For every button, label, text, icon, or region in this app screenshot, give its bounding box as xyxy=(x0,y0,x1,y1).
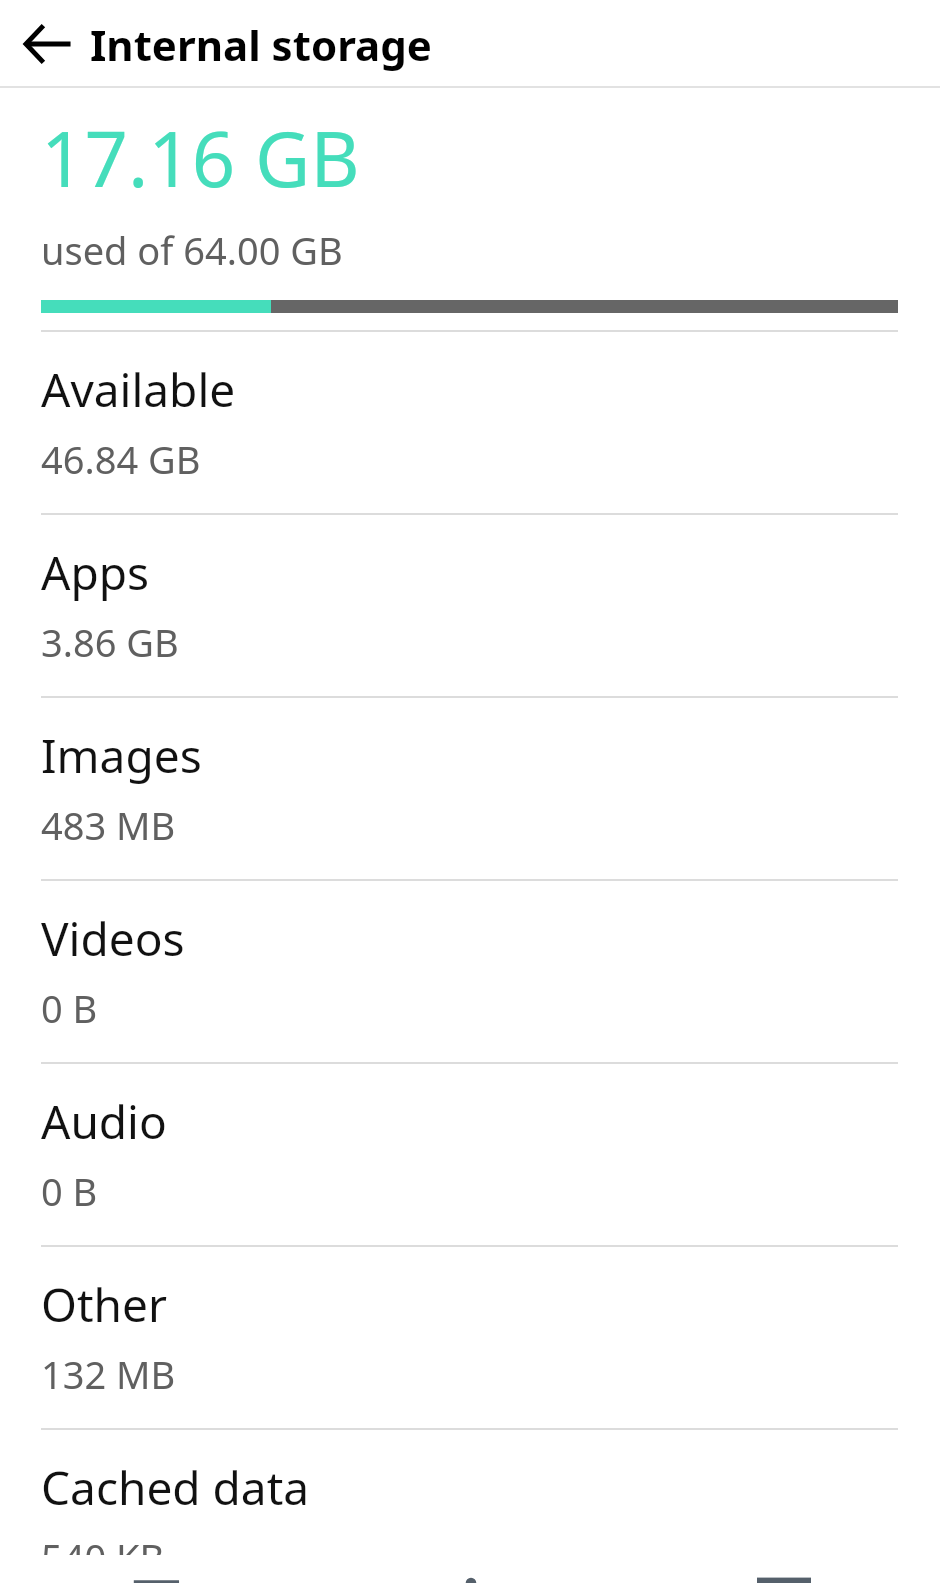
staticText: 540 KB xyxy=(41,1531,165,1555)
staticText: Other xyxy=(41,1273,167,1336)
staticText: Audio xyxy=(41,1090,167,1153)
staticText: Apps xyxy=(41,541,150,604)
staticText: 17.16 GB xyxy=(41,106,360,210)
staticText: Images xyxy=(41,724,202,787)
staticText: 132 MB xyxy=(41,1348,176,1400)
staticText: used of 64.00 GB xyxy=(41,224,343,276)
button[interactable]: Back xyxy=(12,8,84,80)
staticText: 0 B xyxy=(41,1165,98,1217)
staticText: Internal storage xyxy=(90,16,432,73)
staticText: Available xyxy=(41,358,236,421)
button[interactable]: Apps xyxy=(0,515,940,698)
button[interactable]: Other xyxy=(0,1247,940,1430)
staticText: 483 MB xyxy=(41,799,176,851)
staticText: 3.86 GB xyxy=(41,616,179,668)
button[interactable]: Available xyxy=(0,332,940,515)
staticText: Cached data xyxy=(41,1456,310,1519)
staticText: Videos xyxy=(41,907,185,970)
button[interactable]: Videos xyxy=(0,881,940,1064)
button[interactable]: Audio xyxy=(0,1064,940,1247)
staticText: 0 B xyxy=(41,982,98,1034)
button[interactable]: Cached data xyxy=(0,1430,940,1583)
button[interactable]: Images xyxy=(0,698,940,881)
staticText: 46.84 GB xyxy=(41,433,201,485)
